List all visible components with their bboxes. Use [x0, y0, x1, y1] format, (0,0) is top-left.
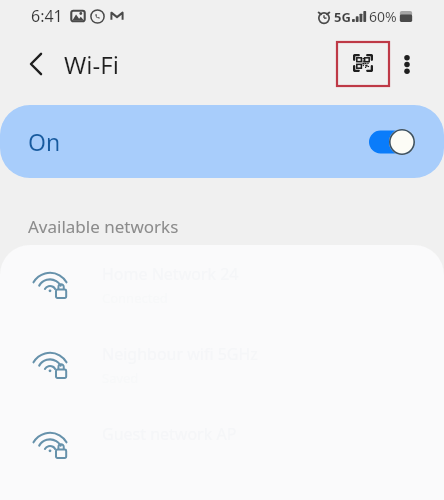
button[interactable]: Home Network 24: [0, 245, 444, 325]
button[interactable]: On: [0, 105, 444, 178]
button[interactable]: More options: [392, 41, 422, 87]
staticText: 6:41: [31, 5, 63, 27]
button[interactable]: Navigate up: [18, 46, 54, 82]
button[interactable]: Guest network AP: [0, 405, 444, 485]
staticText: Wi-Fi: [64, 48, 119, 81]
staticText: Available networks: [28, 215, 179, 238]
button[interactable]: Scan QR code: [336, 41, 390, 87]
button[interactable]: Neighbour wifi 5GHz: [0, 325, 444, 405]
staticText: 5G: [334, 8, 351, 26]
staticText: 60%: [369, 7, 397, 26]
staticText: On: [28, 126, 61, 157]
